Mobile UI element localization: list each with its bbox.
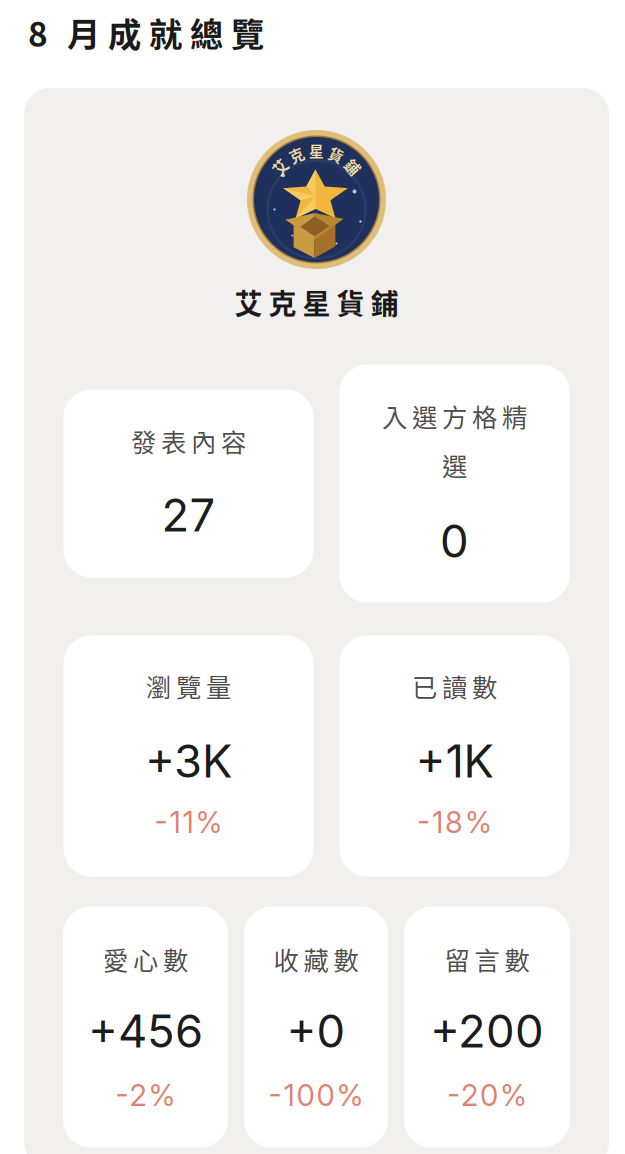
button[interactable]: 愛心數 [63,906,228,1147]
button[interactable]: 入選方格精 [339,364,569,602]
staticText: -2% [115,1077,175,1113]
staticText: 27 [161,487,215,542]
staticText: 已讀數 [412,667,497,704]
button[interactable]: 留言數 [404,906,570,1147]
staticText: 艾 [273,156,288,177]
staticText: +456 [88,1003,203,1058]
staticText: 8 [28,8,48,56]
staticText: +1K [415,733,493,788]
staticText: +3K [145,733,232,788]
staticText: 月成就總覽 [67,8,264,56]
button[interactable]: 發表內容 [63,389,313,577]
staticText: 星 [309,140,324,161]
staticText: 選 [442,446,467,483]
staticText: +0 [286,1003,345,1058]
staticText: 入選方格精 [382,397,527,434]
button[interactable]: 收藏數 [244,906,388,1147]
staticText: 鋪 [345,156,360,177]
staticText: 收藏數 [273,940,358,977]
button[interactable]: 瀏覽量 [63,635,313,876]
staticText: 留言數 [444,940,529,977]
staticText: 發表內容 [131,422,246,459]
staticText: -11% [154,804,222,840]
staticText: 0 [440,513,469,568]
staticText: -18% [417,804,492,840]
staticText: -100% [268,1077,363,1113]
staticText: 克 [289,144,304,165]
staticText: 艾克星貨鋪 [234,282,398,322]
staticText: 瀏覽量 [146,667,231,704]
button[interactable]: 已讀數 [339,635,569,876]
staticText: -20% [447,1077,527,1113]
staticText: +200 [430,1003,544,1058]
staticText: 貨 [329,144,344,165]
staticText: 愛心數 [103,940,188,977]
